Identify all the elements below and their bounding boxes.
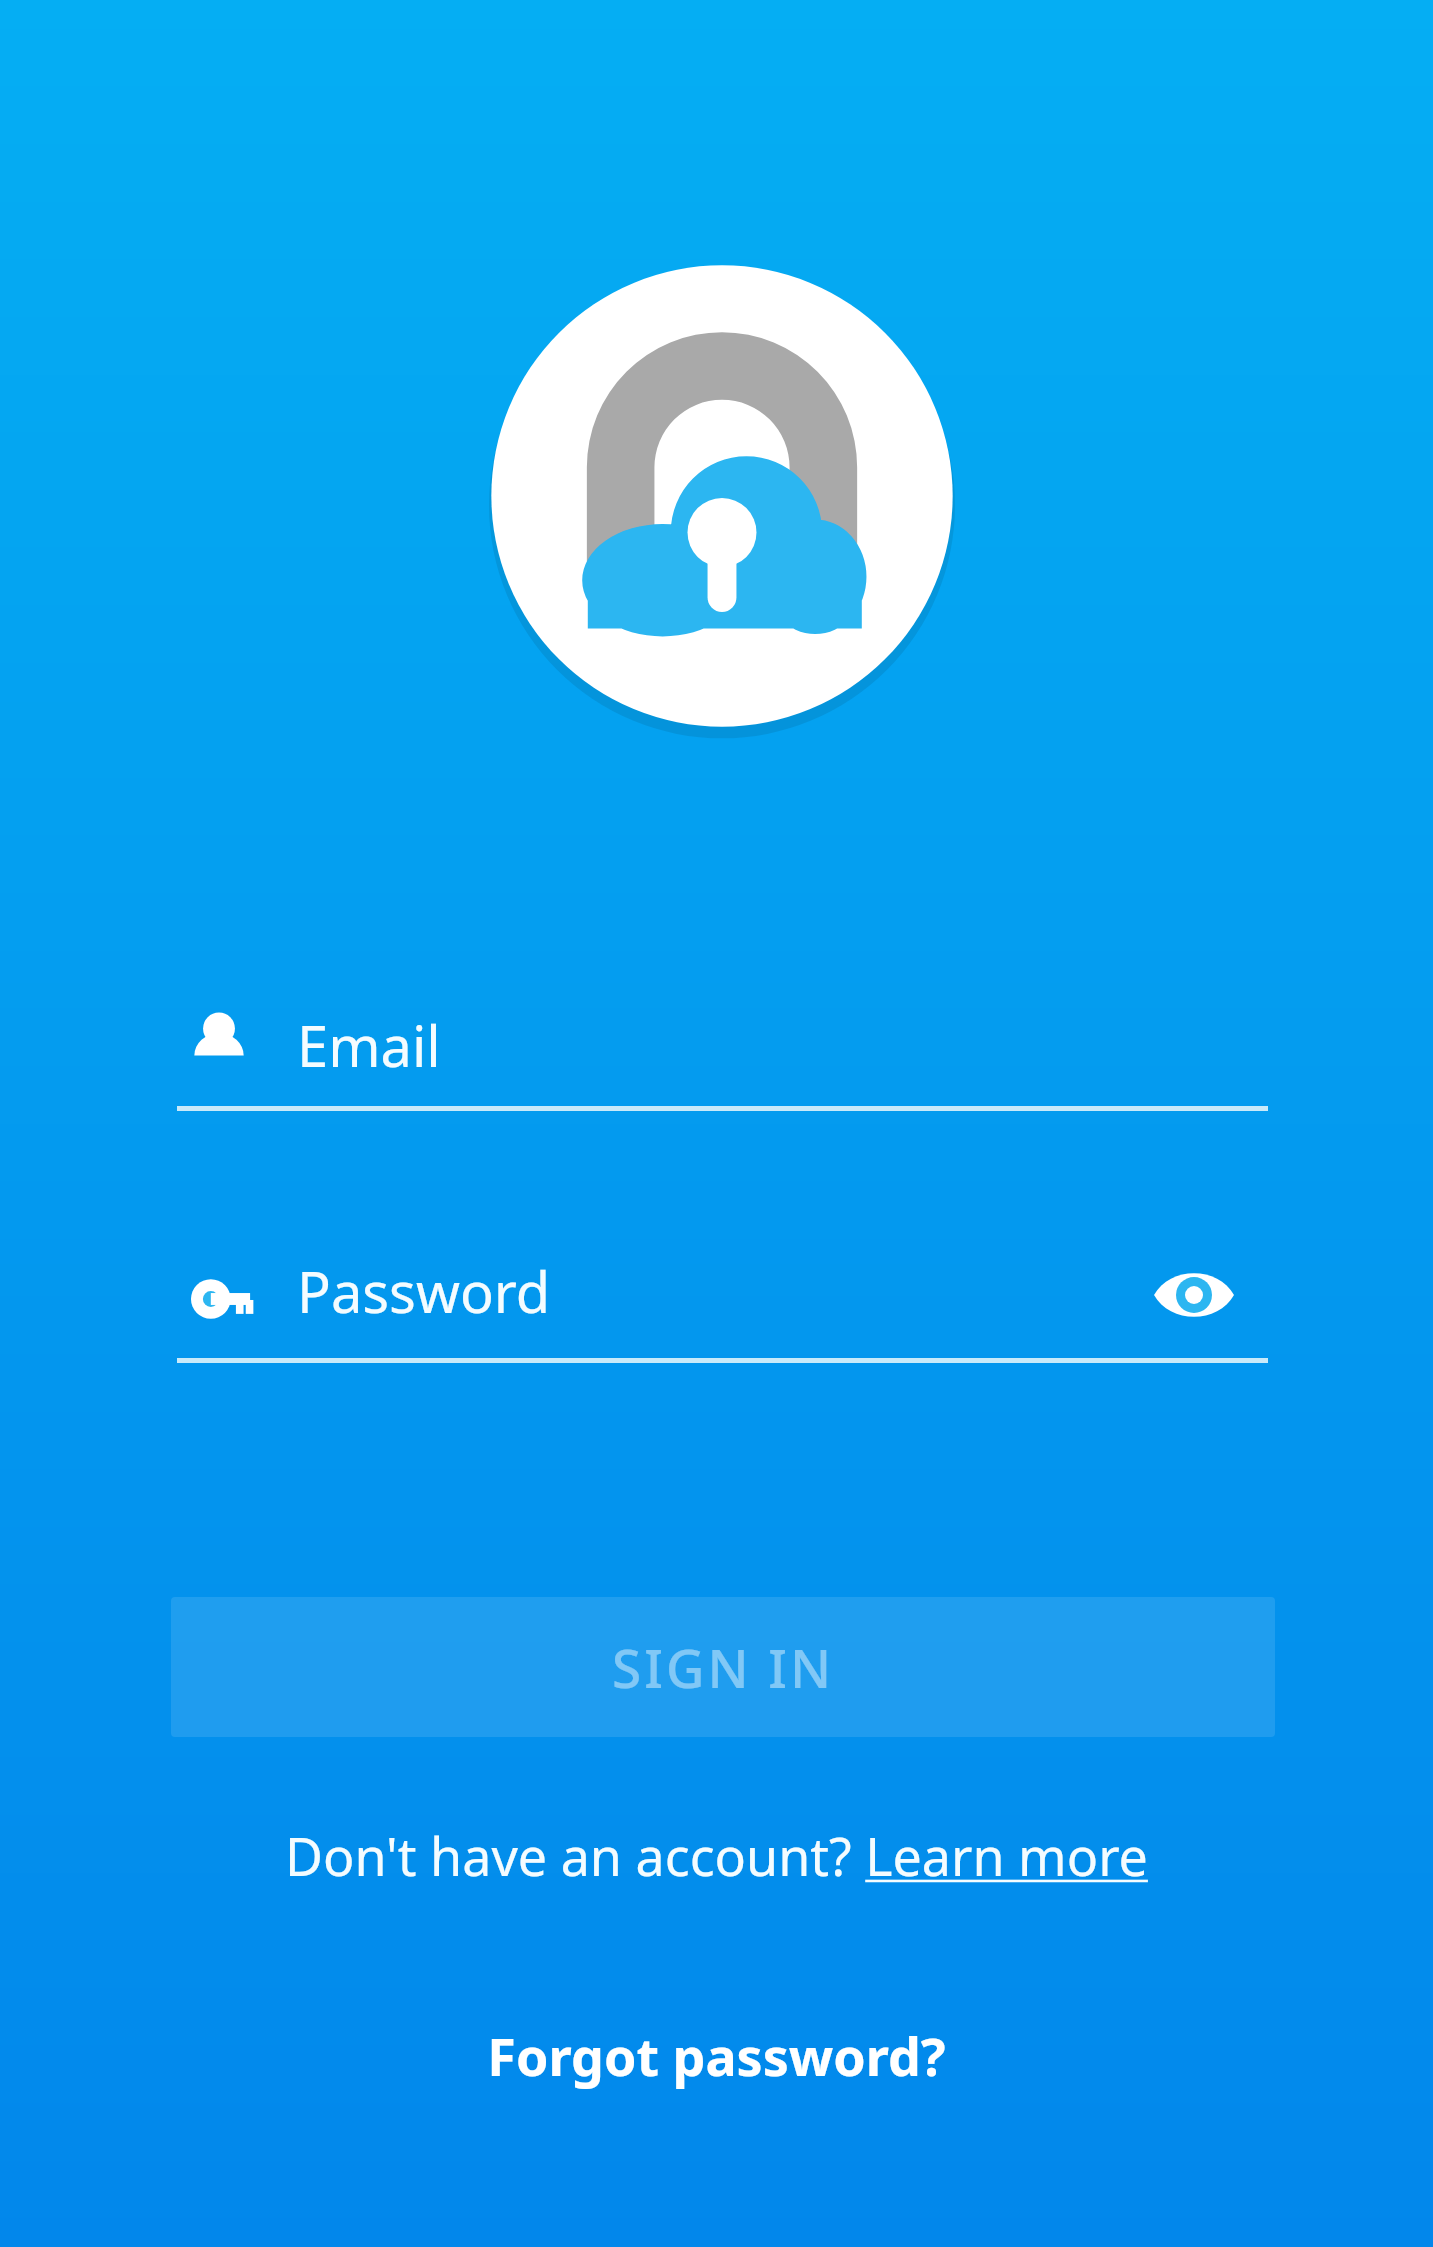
button[interactable]: Password: [177, 1235, 1268, 1363]
button[interactable]: Don't have an account? Learn more: [0, 1800, 1433, 1910]
button[interactable]: Email: [177, 993, 1268, 1111]
staticText: Password: [297, 1253, 551, 1329]
button[interactable]: Forgot password?: [0, 2000, 1433, 2110]
button[interactable]: SIGN IN: [171, 1597, 1275, 1737]
staticText: Don't have an account? Learn more: [285, 1820, 1148, 1891]
staticText: Email: [297, 1007, 441, 1083]
other: Secure cloud logo: [489, 262, 955, 730]
button[interactable]: Show password: [1124, 1225, 1264, 1365]
staticText: SIGN IN: [612, 1631, 835, 1703]
staticText: Forgot password?: [487, 2020, 946, 2091]
